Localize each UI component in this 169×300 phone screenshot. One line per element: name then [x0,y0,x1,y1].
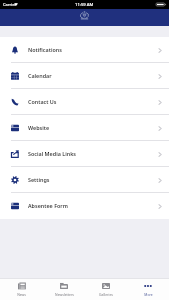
button[interactable]: More [127,279,169,300]
staticText: Social Media Links [28,150,76,157]
staticText: Settings [28,176,50,183]
staticText: More [144,292,153,297]
staticText: News [17,292,26,297]
button[interactable]: Contact Us [0,89,169,115]
staticText: Contact Us [28,98,57,105]
button[interactable]: Galleries [85,279,127,300]
button[interactable]: Newsletters [43,279,85,300]
other: School crest [80,11,89,20]
button[interactable]: Notifications [0,37,169,63]
button[interactable]: Calendar [0,63,169,89]
button[interactable]: Absentee Form [0,193,169,219]
staticText: Notifications [28,46,62,53]
staticText: 11:59 AM [75,2,94,8]
staticText: Absentee Form [28,202,68,209]
staticText: Calendar [28,72,52,79]
staticText: Galleries [99,292,113,297]
button[interactable]: Settings [0,167,169,193]
button[interactable]: News [0,279,43,300]
button[interactable]: Social Media Links [0,141,169,167]
staticText: Carrier [3,2,17,7]
staticText: Newsletters [55,292,74,297]
staticText: Website [28,124,50,131]
button[interactable]: Website [0,115,169,141]
